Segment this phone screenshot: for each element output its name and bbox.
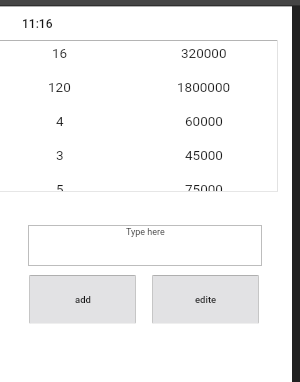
button[interactable]: Type here text field [28,225,262,266]
staticText: 60000 [185,113,223,129]
staticText: 5 [56,181,64,192]
staticText: add [75,294,91,305]
staticText: 3 [56,147,64,163]
staticText: Type here [126,227,165,238]
button[interactable]: add [29,275,136,324]
staticText: 45000 [185,147,223,163]
button[interactable]: edite [152,275,259,324]
staticText: 1800000 [177,79,231,95]
staticText: 320000 [181,45,227,61]
staticText: 4 [56,113,64,129]
staticText: 120 [48,79,71,95]
staticText: 11:16 [22,17,53,31]
staticText: 16 [52,45,68,61]
staticText: 75000 [185,181,223,192]
staticText: edite [195,294,217,305]
